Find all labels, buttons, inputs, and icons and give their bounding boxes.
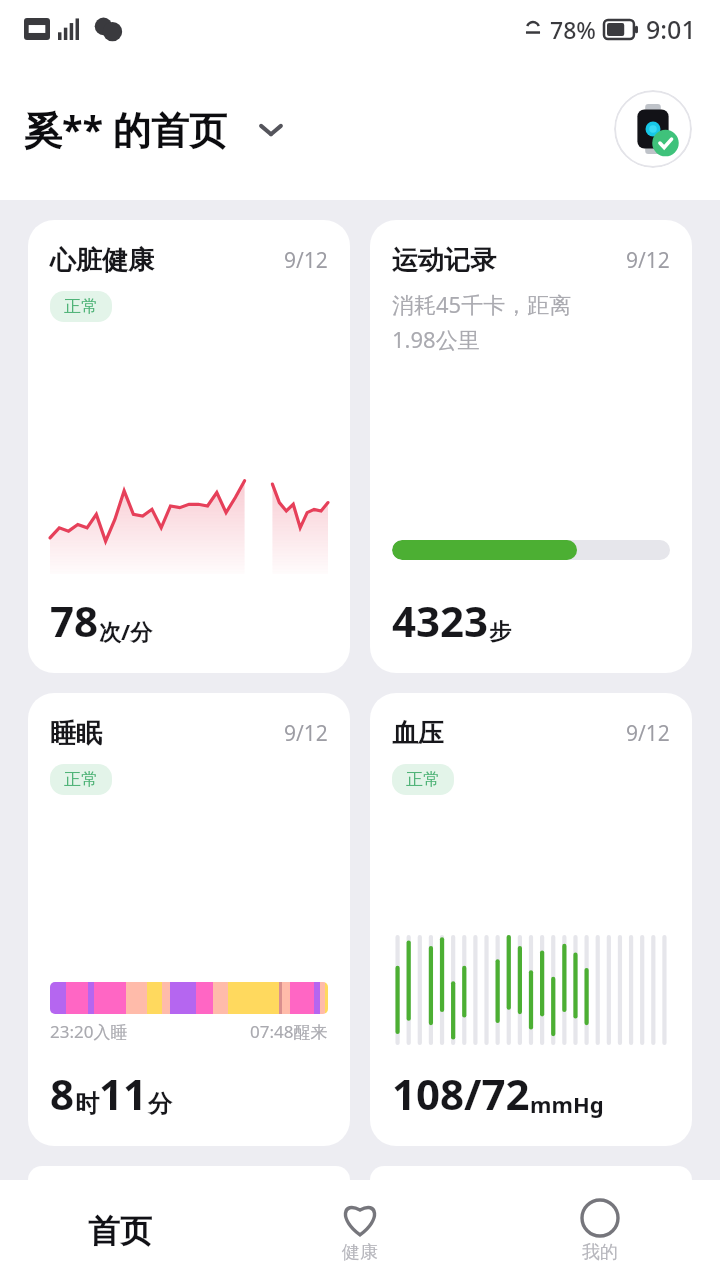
- staticText: 8: [50, 1065, 75, 1122]
- staticText: 分: [148, 1089, 172, 1119]
- staticText: 9:01: [646, 12, 696, 46]
- staticText: 睡眠: [50, 717, 102, 750]
- staticText: 血压: [392, 717, 444, 750]
- staticText: 108/72: [392, 1065, 530, 1122]
- staticText: 正常: [64, 769, 98, 790]
- staticText: 运动记录: [392, 244, 496, 277]
- button[interactable]: 首页: [0, 1180, 240, 1282]
- button[interactable]: 健康: [240, 1180, 480, 1282]
- staticText: 23:20入睡: [50, 1020, 128, 1043]
- button[interactable]: 我的: [480, 1180, 720, 1282]
- button[interactable]: 血压: [370, 693, 692, 1146]
- staticText: 消耗45千卡，距离 1.98公里: [392, 289, 572, 354]
- staticText: 正常: [406, 769, 440, 790]
- button[interactable]: 心脏健康: [28, 220, 350, 673]
- staticText: 首页: [88, 1211, 152, 1251]
- staticText: 步: [489, 618, 511, 646]
- button[interactable]: 睡眠: [28, 693, 350, 1146]
- staticText: 奚** 的首页: [24, 103, 228, 155]
- staticText: 我的: [582, 1241, 618, 1264]
- staticText: 健康: [342, 1241, 378, 1264]
- staticText: 78%: [550, 14, 596, 45]
- button[interactable]: 奚** 的首页: [24, 103, 284, 155]
- staticText: 9/12: [284, 246, 328, 275]
- staticText: 11: [99, 1065, 148, 1122]
- button[interactable]: 运动记录: [370, 220, 692, 673]
- staticText: 时: [75, 1089, 99, 1119]
- button[interactable]: Connected watch: [614, 90, 692, 168]
- staticText: 正常: [64, 296, 98, 317]
- staticText: 次/分: [99, 616, 153, 646]
- staticText: 07:48醒来: [250, 1020, 328, 1043]
- staticText: 心脏健康: [50, 244, 154, 277]
- staticText: 9/12: [626, 246, 670, 275]
- staticText: 4323: [392, 592, 489, 649]
- staticText: 78: [50, 592, 99, 649]
- staticText: mmHg: [530, 1089, 604, 1119]
- staticText: 9/12: [626, 719, 670, 748]
- staticText: 9/12: [284, 719, 328, 748]
